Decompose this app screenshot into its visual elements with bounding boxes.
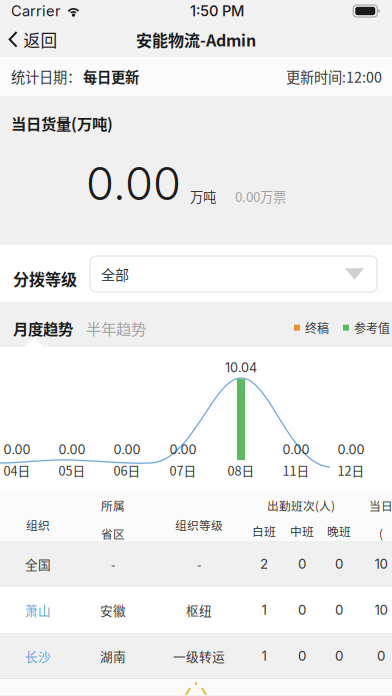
staticText: 0.00 [86, 156, 181, 211]
staticText: 10 [374, 602, 387, 618]
staticText: 0.00 [3, 442, 30, 457]
staticText: 10 [374, 556, 387, 572]
button[interactable]: 全部 [90, 256, 377, 292]
staticText: 0 [335, 556, 343, 572]
staticText: 晚班 [327, 522, 351, 539]
staticText: 0 [377, 648, 385, 664]
staticText: 0 [335, 602, 343, 618]
staticText: 参考值 [354, 319, 390, 336]
staticText: 全部 [101, 264, 129, 284]
button[interactable]: 长沙 [0, 633, 392, 679]
button[interactable]: 半年趋势 [0, 302, 146, 339]
staticText: 0 [335, 648, 343, 664]
staticText: 萧山 [25, 601, 51, 619]
staticText: 1 [261, 602, 266, 618]
staticText: 安能物流-Admin [136, 28, 256, 51]
staticText: 安徽 [100, 601, 126, 619]
staticText: 组织 [26, 516, 50, 533]
staticText: 湖南 [100, 647, 126, 665]
staticText: - [111, 555, 115, 573]
staticText: 枢纽 [186, 601, 212, 619]
staticText: 全国 [25, 555, 51, 573]
button[interactable]: 全国 [0, 541, 392, 587]
staticText: 0.00 [337, 442, 364, 457]
staticText: 省区 [101, 525, 125, 542]
staticText: 1 [261, 648, 266, 664]
staticText: 0 [298, 648, 306, 664]
staticText: 10.04 [225, 360, 257, 375]
staticText: 0 [298, 602, 306, 618]
button[interactable]: 月度趋势 [0, 302, 73, 339]
staticText: 12日 [337, 461, 364, 479]
staticText: 1:50 PM [190, 2, 244, 20]
staticText: 0.00 [169, 442, 196, 457]
staticText: 所属 [101, 497, 125, 514]
staticText: 07日 [169, 461, 196, 479]
staticText: 0.00 [282, 442, 309, 457]
staticText: 月度趋势 [13, 317, 73, 339]
staticText: 组织等级 [175, 516, 223, 533]
staticText: 每日更新 [83, 66, 139, 87]
staticText: 分拨等级 [13, 267, 77, 290]
staticText: 统计日期： [11, 66, 81, 87]
staticText: 04日 [3, 461, 30, 479]
staticText: 更新时间:12:00 [286, 66, 382, 87]
staticText: 万吨 [190, 186, 216, 206]
staticText: 0 [298, 556, 306, 572]
staticText: 0.00万票 [235, 186, 286, 206]
staticText: 06日 [113, 461, 140, 479]
staticText: 返回 [23, 27, 57, 51]
staticText: 当日 [369, 497, 392, 514]
staticText: 白班 [252, 522, 276, 539]
staticText: ( [379, 525, 383, 542]
staticText: 0.00 [113, 442, 140, 457]
staticText: 半年趋势 [86, 317, 146, 339]
staticText: 一级转运 [173, 647, 225, 665]
staticText: 长沙 [25, 647, 51, 665]
staticText: 2 [260, 556, 268, 572]
button[interactable]: 返回 [0, 22, 67, 57]
staticText: 当日货量(万吨) [11, 112, 113, 134]
staticText: 0.00 [58, 442, 85, 457]
staticText: Carrier [11, 2, 61, 20]
staticText: - [197, 555, 201, 573]
button[interactable]: 萧山 [0, 587, 392, 633]
staticText: 11日 [282, 461, 309, 479]
staticText: 中班 [290, 522, 314, 539]
staticText: 08日 [227, 461, 254, 479]
staticText: 终稿 [305, 319, 329, 336]
staticText: 出勤班次(人) [267, 497, 335, 514]
staticText: 05日 [58, 461, 85, 479]
